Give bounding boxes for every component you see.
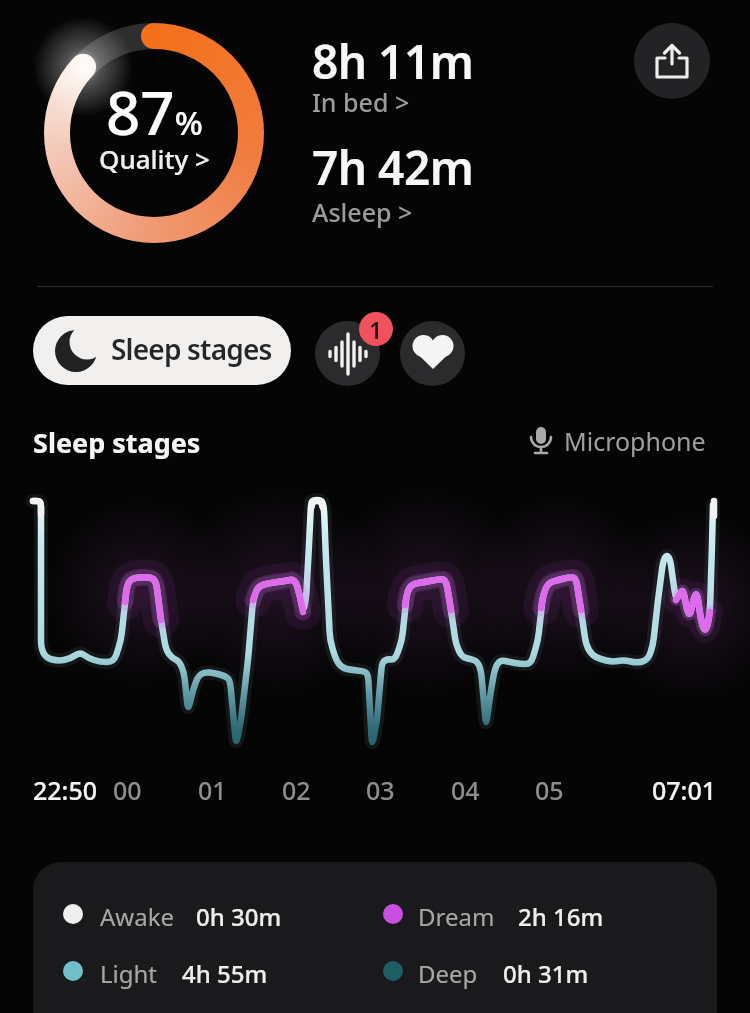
button[interactable]: 87%: [34, 13, 274, 253]
button[interactable]: [315, 321, 380, 386]
button[interactable]: [400, 321, 465, 386]
staticText: Sleep stages: [33, 424, 201, 461]
staticText: 04: [451, 773, 480, 807]
staticText: 2h 16m: [518, 900, 604, 933]
button[interactable]: Microphone: [528, 424, 706, 458]
staticText: 1: [369, 314, 383, 345]
staticText: Asleep >: [312, 195, 413, 229]
staticText: 0h 31m: [503, 957, 589, 990]
staticText: 01: [198, 773, 227, 807]
staticText: 7h 42m: [312, 136, 474, 199]
staticText: 02: [282, 773, 311, 807]
staticText: 05: [535, 773, 564, 807]
staticText: In bed >: [312, 85, 410, 119]
staticText: Dream: [418, 900, 495, 933]
staticText: 0h 30m: [196, 900, 282, 933]
button[interactable]: [634, 23, 710, 99]
staticText: Deep: [418, 957, 478, 990]
staticText: 00: [113, 773, 142, 807]
staticText: Light: [100, 957, 158, 990]
staticText: Quality >: [99, 141, 210, 176]
button[interactable]: [312, 136, 492, 231]
staticText: 22:50: [33, 773, 98, 807]
staticText: 87%: [106, 71, 203, 153]
button[interactable]: Sleep stages: [33, 316, 291, 385]
staticText: Awake: [100, 900, 175, 933]
staticText: 03: [366, 773, 395, 807]
staticText: Microphone: [564, 424, 706, 458]
staticText: 8h 11m: [312, 30, 474, 93]
staticText: 07:01: [652, 773, 717, 807]
staticText: 4h 55m: [182, 957, 268, 990]
staticText: Sleep stages: [111, 330, 272, 368]
button[interactable]: [312, 30, 492, 125]
